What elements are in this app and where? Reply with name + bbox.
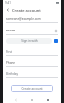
staticText: Sign in with: [21, 39, 38, 43]
button[interactable]: Sign in with: [6, 38, 52, 44]
button[interactable]: Show password: [53, 28, 58, 33]
button[interactable]: Recent apps: [45, 97, 51, 103]
staticText: Create account: [12, 8, 41, 13]
staticText: Phone: [6, 61, 58, 65]
staticText: ••••••••: [6, 29, 53, 33]
staticText: First: [6, 50, 58, 54]
staticText: Create account: [21, 87, 43, 91]
button[interactable]: Back: [13, 97, 19, 103]
staticText: 9:41: [5, 1, 11, 5]
button[interactable]: Birthday: [6, 70, 58, 78]
staticText: someone@example.com: [6, 17, 58, 21]
button[interactable]: Phone: [6, 59, 58, 67]
button[interactable]: Account options: [54, 39, 58, 43]
staticText: Birthday: [6, 72, 58, 76]
button[interactable]: Back: [5, 7, 11, 13]
button[interactable]: First: [6, 48, 58, 56]
button[interactable]: ••••••••: [6, 26, 58, 35]
button[interactable]: someone@example.com: [6, 15, 58, 23]
button[interactable]: Home: [29, 97, 35, 103]
button[interactable]: Create account: [11, 85, 53, 92]
